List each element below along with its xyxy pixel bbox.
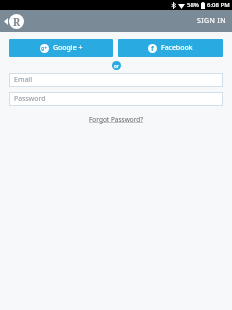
staticText: Email <box>14 75 32 85</box>
staticText: 58% <box>187 1 199 9</box>
button[interactable]: SIGN IN <box>191 12 232 30</box>
button[interactable]: f <box>118 39 223 57</box>
other: or <box>112 61 121 70</box>
button[interactable]: Forgot Password? <box>83 113 150 126</box>
staticText: SIGN IN <box>197 16 226 26</box>
staticText: Password <box>14 94 46 104</box>
staticText: Facebook <box>161 43 193 53</box>
staticText: f <box>151 44 154 53</box>
staticText: 6:08 PM <box>207 1 230 9</box>
button[interactable]: Password <box>9 92 223 106</box>
staticText: g+ <box>41 45 48 52</box>
staticText: Forgot Password? <box>89 115 144 124</box>
staticText: or <box>114 63 119 69</box>
button[interactable]: g+ <box>9 39 113 57</box>
button[interactable]: Email <box>9 73 223 87</box>
staticText: R <box>13 15 21 29</box>
staticText: Google + <box>53 43 83 53</box>
button[interactable]: Back <box>0 14 28 29</box>
